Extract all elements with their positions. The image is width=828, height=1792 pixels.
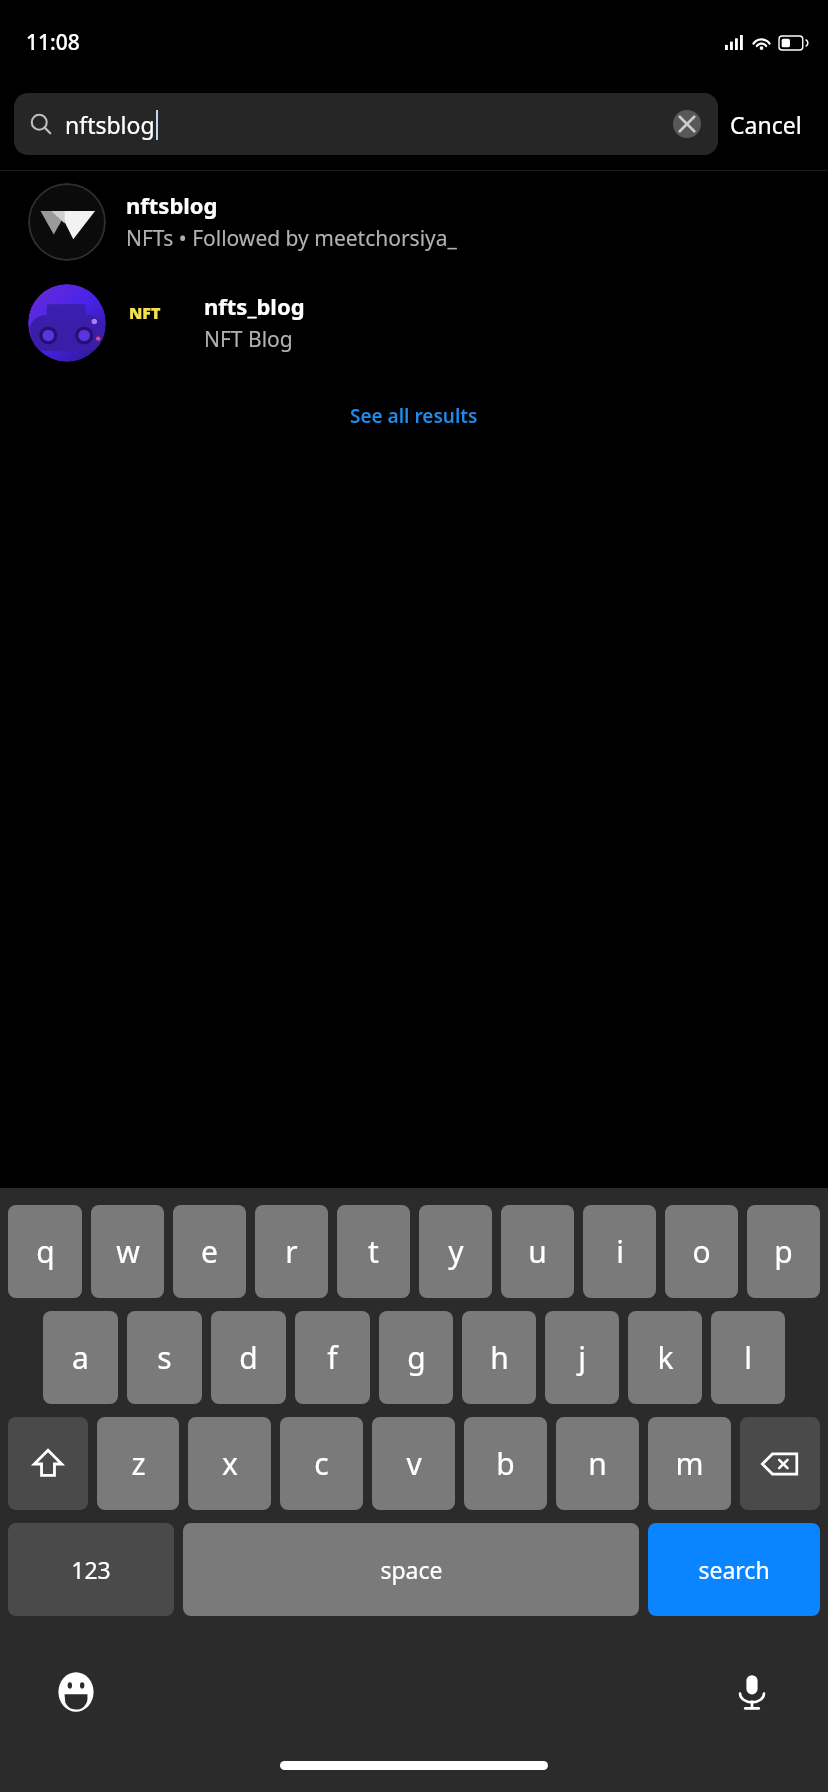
staticText: k: [657, 1337, 674, 1378]
button[interactable]: i: [583, 1205, 656, 1298]
staticText: w: [116, 1231, 140, 1272]
button[interactable]: r: [255, 1205, 328, 1298]
button[interactable]: z: [97, 1417, 179, 1510]
button[interactable]: search: [648, 1523, 820, 1616]
staticText: 123: [71, 1554, 111, 1585]
button[interactable]: m: [648, 1417, 731, 1510]
button[interactable]: Shift: [8, 1417, 88, 1510]
button[interactable]: n: [556, 1417, 639, 1510]
button[interactable]: b: [464, 1417, 547, 1510]
staticText: x: [222, 1443, 238, 1484]
button[interactable]: See all results: [340, 399, 488, 433]
button[interactable]: Backspace: [740, 1417, 820, 1510]
staticText: nftsblog: [65, 109, 155, 140]
staticText: s: [157, 1337, 172, 1378]
staticText: l: [744, 1337, 752, 1378]
button[interactable]: t: [337, 1205, 410, 1298]
staticText: t: [368, 1231, 379, 1272]
button[interactable]: d: [211, 1311, 286, 1404]
button[interactable]: k: [628, 1311, 702, 1404]
button[interactable]: NFT: [0, 272, 828, 373]
staticText: r: [285, 1231, 298, 1272]
button[interactable]: w: [91, 1205, 164, 1298]
staticText: m: [675, 1443, 704, 1484]
button[interactable]: l: [711, 1311, 785, 1404]
staticText: See all results: [350, 403, 478, 429]
button[interactable]: a: [43, 1311, 118, 1404]
button[interactable]: f: [295, 1311, 370, 1404]
staticText: nfts_blog: [204, 291, 305, 321]
staticText: 11:08: [26, 28, 80, 57]
staticText: NFT: [129, 302, 161, 324]
staticText: NFTs • Followed by meetchorsiya_: [126, 224, 457, 253]
staticText: Cancel: [730, 109, 802, 140]
button[interactable]: c: [280, 1417, 363, 1510]
button[interactable]: v: [372, 1417, 455, 1510]
button[interactable]: u: [501, 1205, 574, 1298]
button[interactable]: q: [8, 1205, 82, 1298]
button[interactable]: Cancel: [718, 103, 814, 146]
staticText: n: [588, 1443, 607, 1484]
button[interactable]: g: [379, 1311, 453, 1404]
staticText: z: [131, 1443, 146, 1484]
staticText: nftsblog: [126, 190, 218, 220]
staticText: a: [72, 1337, 89, 1378]
staticText: search: [698, 1554, 770, 1585]
button[interactable]: space: [183, 1523, 639, 1616]
staticText: i: [616, 1231, 624, 1272]
staticText: b: [496, 1443, 515, 1484]
staticText: y: [448, 1231, 464, 1272]
button[interactable]: nftsblog: [0, 171, 828, 272]
staticText: v: [406, 1443, 422, 1484]
staticText: c: [314, 1443, 329, 1484]
staticText: j: [578, 1337, 586, 1378]
staticText: e: [201, 1231, 218, 1272]
button[interactable]: e: [173, 1205, 246, 1298]
button[interactable]: x: [188, 1417, 271, 1510]
staticText: u: [528, 1231, 547, 1272]
staticText: d: [239, 1337, 258, 1378]
staticText: space: [380, 1554, 443, 1585]
button[interactable]: h: [462, 1311, 536, 1404]
button[interactable]: Emoji: [50, 1666, 102, 1718]
staticText: q: [36, 1231, 55, 1272]
button[interactable]: s: [127, 1311, 202, 1404]
staticText: h: [490, 1337, 509, 1378]
button[interactable]: j: [545, 1311, 619, 1404]
button[interactable]: Voice input: [726, 1666, 778, 1718]
staticText: o: [692, 1231, 711, 1272]
button[interactable]: o: [665, 1205, 738, 1298]
staticText: p: [774, 1231, 793, 1272]
staticText: f: [327, 1337, 338, 1378]
button[interactable]: y: [419, 1205, 492, 1298]
button[interactable]: 123: [8, 1523, 174, 1616]
staticText: NFT Blog: [204, 325, 293, 354]
button[interactable]: Clear text: [672, 109, 702, 139]
button[interactable]: nftsblog: [14, 93, 718, 155]
staticText: g: [407, 1337, 426, 1378]
button[interactable]: p: [747, 1205, 820, 1298]
